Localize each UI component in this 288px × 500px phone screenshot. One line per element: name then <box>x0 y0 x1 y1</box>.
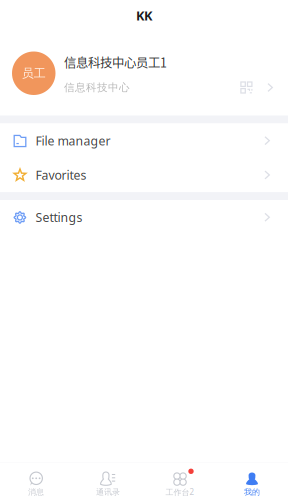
button[interactable]: File manager <box>0 123 288 158</box>
staticText: KK <box>136 7 152 24</box>
staticText: 信息科技中心 <box>64 81 130 94</box>
staticText: File manager <box>35 132 110 149</box>
button[interactable]: 消息 <box>0 462 72 500</box>
button[interactable]: Favorites <box>0 158 288 192</box>
button[interactable]: 通讯录 <box>72 462 144 500</box>
staticText: 工作台2 <box>165 487 194 497</box>
staticText: 我的 <box>244 487 260 497</box>
staticText: Settings <box>35 209 82 226</box>
button[interactable]: 我的 <box>216 462 288 500</box>
staticText: 员工 <box>22 66 46 81</box>
button[interactable]: Settings <box>0 200 288 234</box>
staticText: 消息 <box>28 487 44 497</box>
staticText: 信息科技中心员工1 <box>64 53 167 71</box>
staticText: Favorites <box>35 167 86 183</box>
staticText: 通讯录 <box>96 487 120 497</box>
button[interactable]: 工作台2 <box>144 462 216 500</box>
button[interactable]: 员工 <box>0 31 288 115</box>
